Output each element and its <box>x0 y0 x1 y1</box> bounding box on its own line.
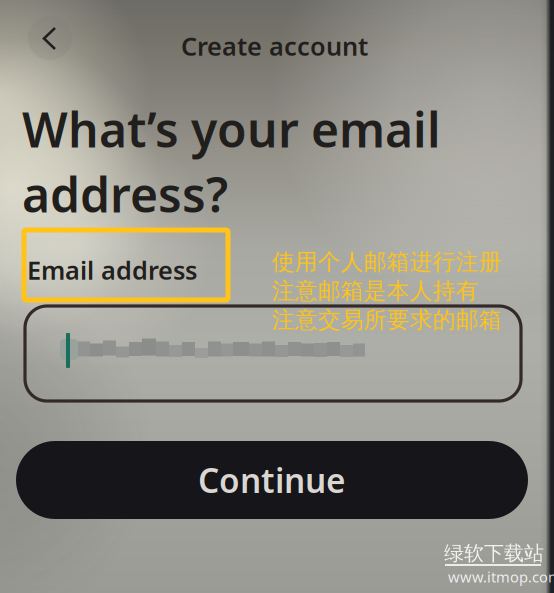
staticText: 注意交易所要求的邮箱 <box>272 306 502 334</box>
staticText: Email address <box>27 253 197 287</box>
staticText: Create account <box>181 29 368 63</box>
button[interactable]: Continue <box>16 441 528 519</box>
staticText: 注意邮箱是本人持有 <box>272 277 479 305</box>
staticText: What’s your email <box>22 97 441 161</box>
staticText: 使用个人邮箱进行注册 <box>272 248 502 276</box>
staticText: www.itmop.com <box>448 567 554 586</box>
staticText: address? <box>22 162 228 226</box>
button[interactable]: Back <box>28 16 72 60</box>
staticText: 绿软下载站 <box>444 541 544 566</box>
staticText: Continue <box>198 458 346 502</box>
